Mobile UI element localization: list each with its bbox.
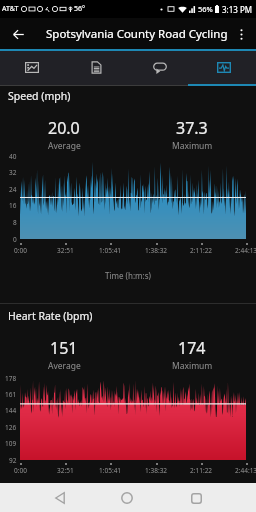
staticText: 24 [9, 185, 17, 194]
staticText: Heart Rate (bpm) [8, 309, 93, 323]
staticText: 109 [5, 439, 17, 448]
staticText: Speed (mph) [8, 89, 71, 103]
staticText: 32:51 [57, 466, 74, 475]
staticText: AT&T [2, 4, 19, 14]
staticText: Average [48, 140, 81, 152]
staticText: 0:00 [14, 246, 27, 255]
staticText: 56° [74, 4, 86, 14]
staticText: 2:11:22 [190, 246, 213, 255]
staticText: 174 [178, 337, 206, 359]
staticText: 1:38:32 [145, 246, 168, 255]
staticText: 40 [9, 152, 17, 161]
staticText: 2:44:13 [235, 246, 256, 255]
staticText: 8 [13, 218, 17, 227]
staticText: 32:51 [57, 246, 74, 255]
staticText: 144 [5, 406, 17, 415]
staticText: 32 [9, 168, 17, 177]
staticText: 1:05:41 [99, 246, 122, 255]
staticText: 151 [50, 337, 78, 359]
staticText: Maximum [172, 360, 213, 372]
staticText: 2:44:13 [235, 466, 256, 475]
button[interactable]: Details [64, 51, 128, 86]
staticText: 3:13 PM [222, 4, 253, 15]
staticText: 161 [5, 390, 17, 399]
staticText: Spotsylvania County Road Cycling [46, 26, 228, 42]
button[interactable]: Recent apps [182, 484, 210, 512]
staticText: Time (h:m:s) [105, 270, 151, 281]
button[interactable]: Laps [128, 51, 192, 86]
staticText: 92 [9, 456, 17, 465]
staticText: 0 [13, 235, 17, 244]
staticText: 126 [5, 423, 17, 432]
button[interactable]: Map [0, 51, 64, 86]
button[interactable]: Navigate up [2, 18, 34, 50]
staticText: 16 [9, 201, 17, 210]
staticText: 0:00 [14, 466, 27, 475]
staticText: 20.0 [48, 117, 80, 139]
staticText: 178 [5, 374, 17, 383]
button[interactable]: Back [46, 484, 74, 512]
button[interactable]: More options [226, 19, 256, 49]
staticText: 56% [198, 4, 213, 14]
staticText: Maximum [172, 140, 213, 152]
staticText: 37.3 [176, 117, 208, 139]
button[interactable]: Home [113, 484, 141, 512]
staticText: Average [48, 360, 81, 372]
button[interactable]: Charts [192, 51, 256, 86]
staticText: 1:05:41 [99, 466, 122, 475]
staticText: 2:11:22 [190, 466, 213, 475]
staticText: 1:38:32 [145, 466, 168, 475]
